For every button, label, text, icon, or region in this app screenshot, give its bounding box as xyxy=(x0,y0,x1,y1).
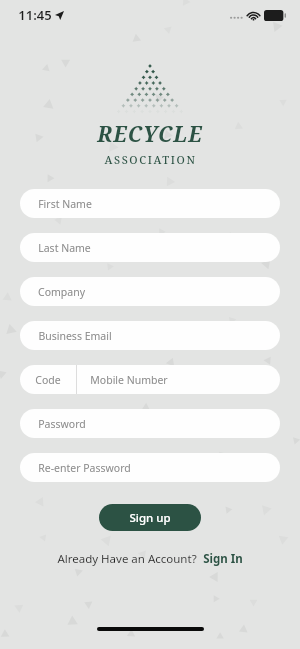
button[interactable]: Password xyxy=(20,409,280,438)
button[interactable]: Mobile Number xyxy=(77,365,280,394)
button[interactable]: Last Name xyxy=(20,233,280,262)
button[interactable]: Re-enter Password xyxy=(20,453,280,482)
staticText: Mobile Number xyxy=(90,373,168,387)
staticText: Last Name xyxy=(38,241,91,255)
staticText: 11:45 xyxy=(18,6,52,24)
staticText: Already Have an Account? xyxy=(57,551,197,567)
button[interactable]: Code xyxy=(20,365,76,394)
staticText: ASSOCIATION xyxy=(104,152,197,167)
button[interactable]: Sign up xyxy=(99,504,201,531)
staticText: Re-enter Password xyxy=(38,461,131,475)
button[interactable]: Company xyxy=(20,277,280,306)
staticText: First Name xyxy=(38,197,92,211)
button[interactable]: Sign In xyxy=(203,551,243,567)
staticText: Sign up xyxy=(129,510,171,526)
staticText: RECYCLE xyxy=(97,120,203,149)
button[interactable]: First Name xyxy=(20,189,280,218)
staticText: Company xyxy=(38,285,85,299)
button[interactable]: Business Email xyxy=(20,321,280,350)
staticText: Code xyxy=(35,373,61,387)
staticText: Password xyxy=(38,417,86,431)
staticText: Sign In xyxy=(203,551,243,567)
staticText: Business Email xyxy=(38,329,112,343)
